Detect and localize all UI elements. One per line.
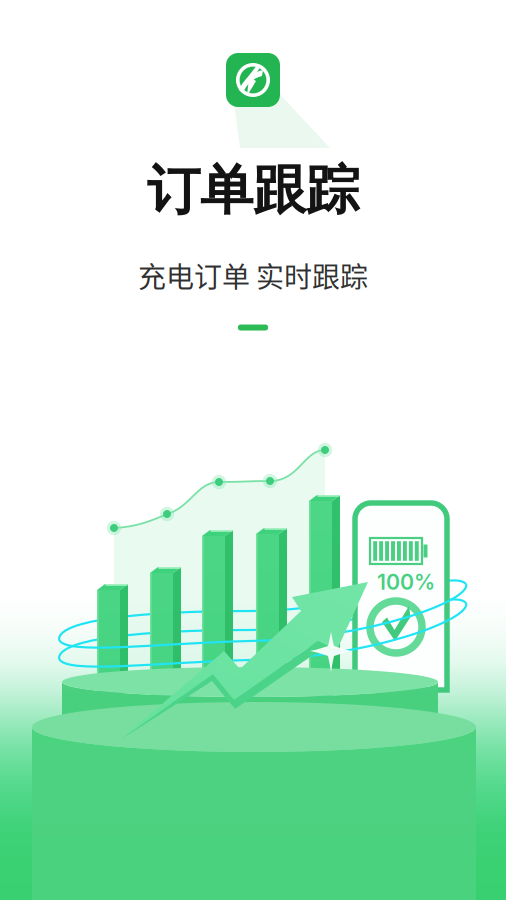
staticText: 充电订单 实时跟踪 xyxy=(138,255,368,295)
staticText: 100% xyxy=(377,569,435,595)
staticText: 订单跟踪 xyxy=(147,157,359,224)
